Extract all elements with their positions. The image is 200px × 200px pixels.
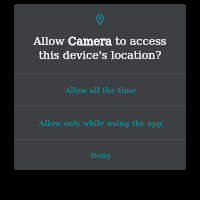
staticText: Allow all the time — [65, 86, 136, 94]
staticText: Allow Camera to access this device's loc… — [14, 35, 186, 61]
staticText: Allow only while using the app — [39, 119, 162, 127]
button[interactable]: Allow all the time — [14, 74, 186, 106]
other: Location — [96, 14, 104, 25]
button[interactable]: Deny — [14, 140, 186, 170]
button[interactable]: Allow only while using the app — [14, 107, 186, 139]
staticText: Deny — [90, 151, 111, 159]
